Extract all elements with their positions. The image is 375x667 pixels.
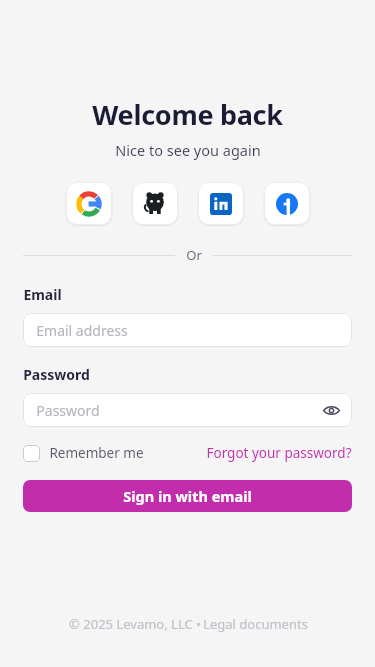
- button[interactable]: Sign in with GitHub: [132, 182, 178, 225]
- button[interactable]: Sign in with Google: [66, 182, 112, 225]
- staticText: Nice to see you again: [115, 140, 261, 160]
- button[interactable]: Sign in with LinkedIn: [198, 182, 244, 225]
- button[interactable]: Email address: [23, 313, 352, 347]
- staticText: Or: [186, 246, 202, 264]
- staticText: © 2025 Levamo, LLC •: [67, 615, 203, 633]
- staticText: Email: [23, 285, 62, 304]
- staticText: Welcome back: [92, 96, 283, 133]
- button[interactable]: Password: [23, 393, 352, 427]
- button[interactable]: Sign in with Facebook: [264, 182, 310, 225]
- button[interactable]: Forgot your password?: [206, 442, 352, 464]
- button[interactable]: Sign in with email: [23, 480, 352, 512]
- staticText: Forgot your password?: [206, 444, 352, 462]
- staticText: Remember me: [49, 444, 144, 462]
- staticText: Sign in with email: [123, 486, 252, 506]
- staticText: Email address: [36, 321, 128, 340]
- staticText: Password: [36, 401, 100, 420]
- staticText: Legal documents: [203, 615, 308, 633]
- staticText: Password: [23, 365, 90, 384]
- button[interactable]: Legal documents: [203, 615, 308, 633]
- button[interactable]: Show password: [320, 399, 342, 421]
- button[interactable]: Remember me: [23, 442, 144, 464]
